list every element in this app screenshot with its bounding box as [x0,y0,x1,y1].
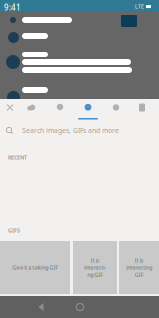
button[interactable]: Weather [19,99,43,121]
button[interactable]: Settings [130,99,154,121]
button[interactable]: Stickers [76,99,100,121]
button[interactable]: Search [48,99,72,121]
button[interactable]: Back [38,301,50,313]
staticText: LTE [135,3,144,10]
button[interactable]: Close [0,99,22,121]
staticText: It is interesting GIF [84,257,106,278]
button[interactable]: It is interesting GIF [73,241,117,294]
button[interactable]: Recent [104,99,128,121]
staticText: Search images, GIFs and more [22,126,119,135]
staticText: It is interesting GIF [126,257,152,278]
staticText: RECENT [8,154,27,161]
button[interactable]: Give it a talking GIF [0,241,70,294]
button[interactable]: It is interesting GIF [119,241,159,294]
staticText: GIFS [8,227,20,234]
staticText: 9:41 [4,2,21,13]
button[interactable]: Home [74,301,86,313]
button[interactable]: Search images, GIFs and more [0,122,159,140]
staticText: Give it a talking GIF [12,264,58,271]
